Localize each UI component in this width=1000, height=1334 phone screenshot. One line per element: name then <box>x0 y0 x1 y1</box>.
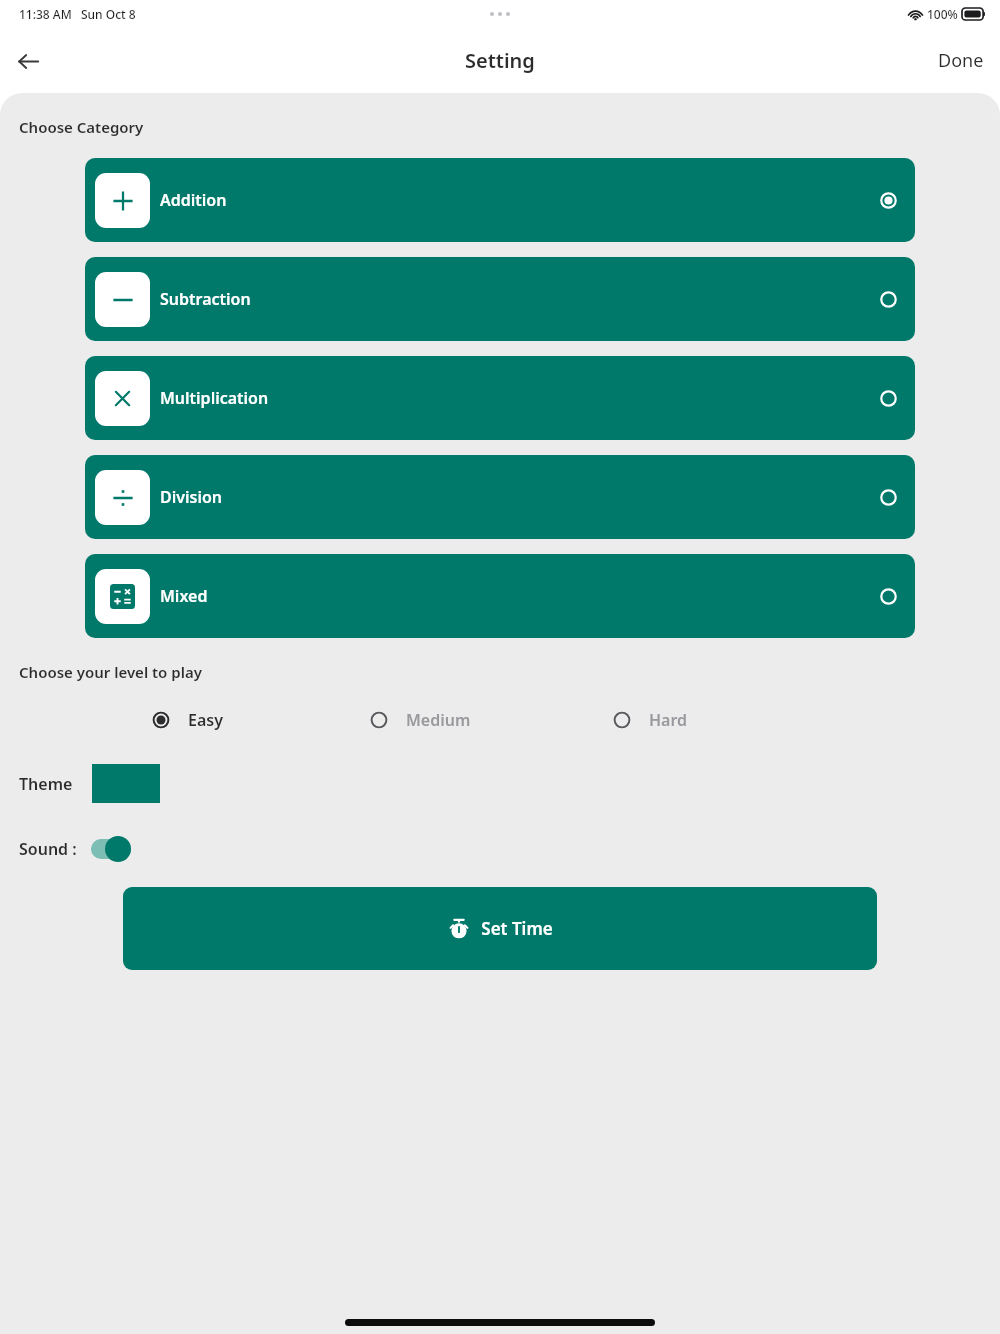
button[interactable]: Done <box>922 38 1000 83</box>
staticText: Sun Oct 8 <box>81 6 136 22</box>
staticText: Setting <box>465 47 535 74</box>
button[interactable]: Back <box>8 41 48 81</box>
staticText: Hard <box>649 709 688 731</box>
button[interactable]: Easy <box>152 709 223 731</box>
staticText: Choose Category <box>19 117 144 137</box>
staticText: Addition <box>160 189 227 211</box>
staticText: Easy <box>188 709 223 731</box>
button[interactable]: Medium <box>370 709 471 731</box>
staticText: Multiplication <box>160 387 269 409</box>
staticText: Subtraction <box>160 288 251 310</box>
button[interactable]: Set Time <box>123 887 877 970</box>
staticText: Choose your level to play <box>19 662 202 682</box>
staticText: Medium <box>406 709 471 731</box>
button[interactable]: Hard <box>613 709 688 731</box>
staticText: Done <box>938 48 984 73</box>
button[interactable]: Multiplication <box>85 356 915 440</box>
staticText: Mixed <box>160 585 208 607</box>
button[interactable]: Subtraction <box>85 257 915 341</box>
button[interactable]: Sound toggle <box>90 834 142 864</box>
button[interactable]: Addition <box>85 158 915 242</box>
staticText: Division <box>160 486 223 508</box>
staticText: Sound : <box>19 838 77 860</box>
staticText: 11:38 AM <box>19 6 72 22</box>
staticText: 100% <box>927 6 958 22</box>
button[interactable]: Mixed <box>85 554 915 638</box>
staticText: Set Time <box>481 917 553 940</box>
staticText: Theme <box>19 773 73 795</box>
button[interactable]: Division <box>85 455 915 539</box>
